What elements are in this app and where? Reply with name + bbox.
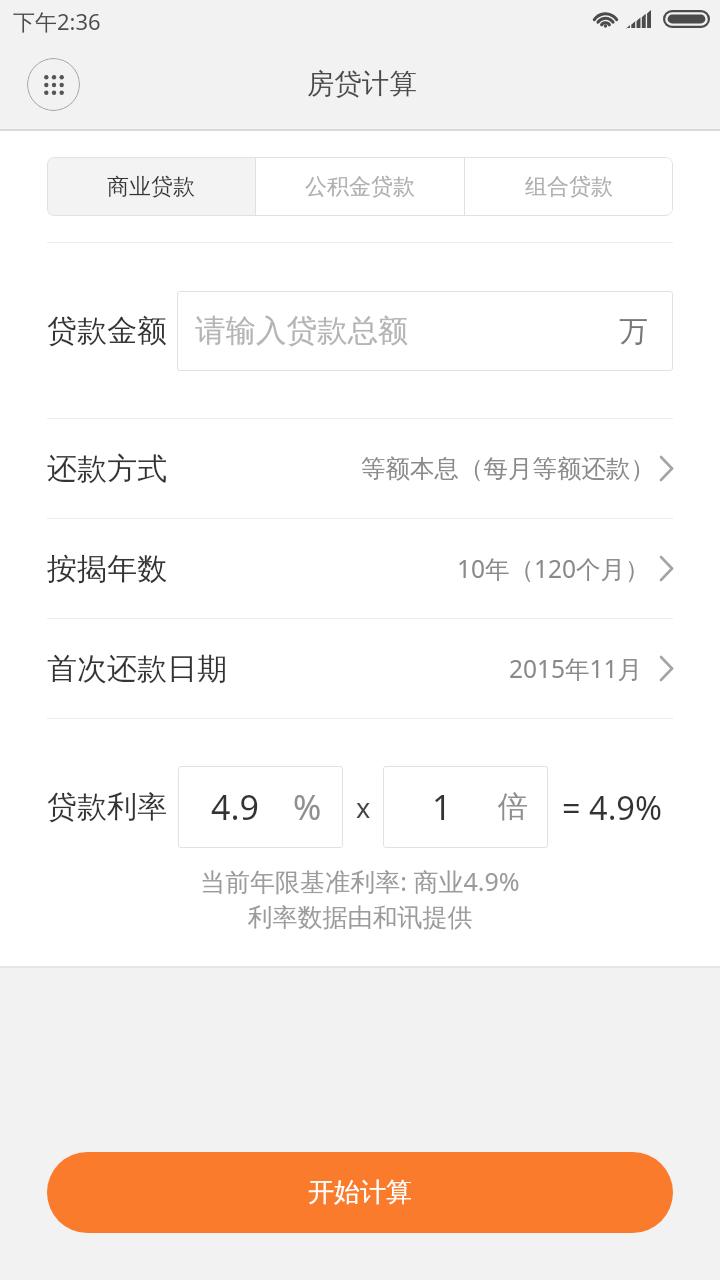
staticText: 贷款利率 xyxy=(47,788,167,826)
button[interactable]: 公积金贷款 xyxy=(256,157,464,216)
staticText: 还款方式 xyxy=(47,450,167,488)
button[interactable]: 组合贷款 xyxy=(465,157,673,216)
button[interactable]: 请输入贷款总额 xyxy=(195,291,648,371)
button[interactable]: 商业贷款 xyxy=(47,157,255,216)
staticText: 公积金贷款 xyxy=(305,173,415,201)
button[interactable]: Apps menu xyxy=(27,58,80,111)
button[interactable]: 开始计算 xyxy=(47,1152,673,1233)
staticText: 万 xyxy=(619,313,648,350)
staticText: 请输入贷款总额 xyxy=(195,312,409,350)
staticText: 贷款金额 xyxy=(47,312,167,350)
staticText: % xyxy=(293,784,322,830)
button[interactable]: 4.9 xyxy=(178,766,343,848)
button[interactable]: 按揭年数 xyxy=(47,519,673,618)
staticText: 等额本息（每月等额还款） xyxy=(361,453,655,484)
staticText: 1 xyxy=(432,784,452,830)
staticText: 倍 xyxy=(498,788,528,826)
staticText: 首次还款日期 xyxy=(47,650,227,688)
staticText: 当前年限基准利率: 商业4.9% xyxy=(0,864,720,898)
button[interactable]: 还款方式 xyxy=(47,419,673,518)
staticText: x xyxy=(356,789,371,826)
staticText: 10年（120个月） xyxy=(457,552,650,585)
staticText: 2015年11月 xyxy=(509,652,643,685)
button[interactable]: 首次还款日期 xyxy=(47,619,673,718)
staticText: 房贷计算 xyxy=(307,67,417,102)
staticText: 利率数据由和讯提供 xyxy=(0,902,720,933)
staticText: 下午2:36 xyxy=(13,6,101,36)
staticText: 开始计算 xyxy=(308,1176,412,1209)
staticText: 组合贷款 xyxy=(525,173,613,201)
staticText: = 4.9% xyxy=(562,785,662,829)
staticText: 4.9 xyxy=(211,784,260,830)
staticText: 按揭年数 xyxy=(47,550,167,588)
staticText: 商业贷款 xyxy=(107,173,195,201)
button[interactable]: 1 xyxy=(383,766,548,848)
